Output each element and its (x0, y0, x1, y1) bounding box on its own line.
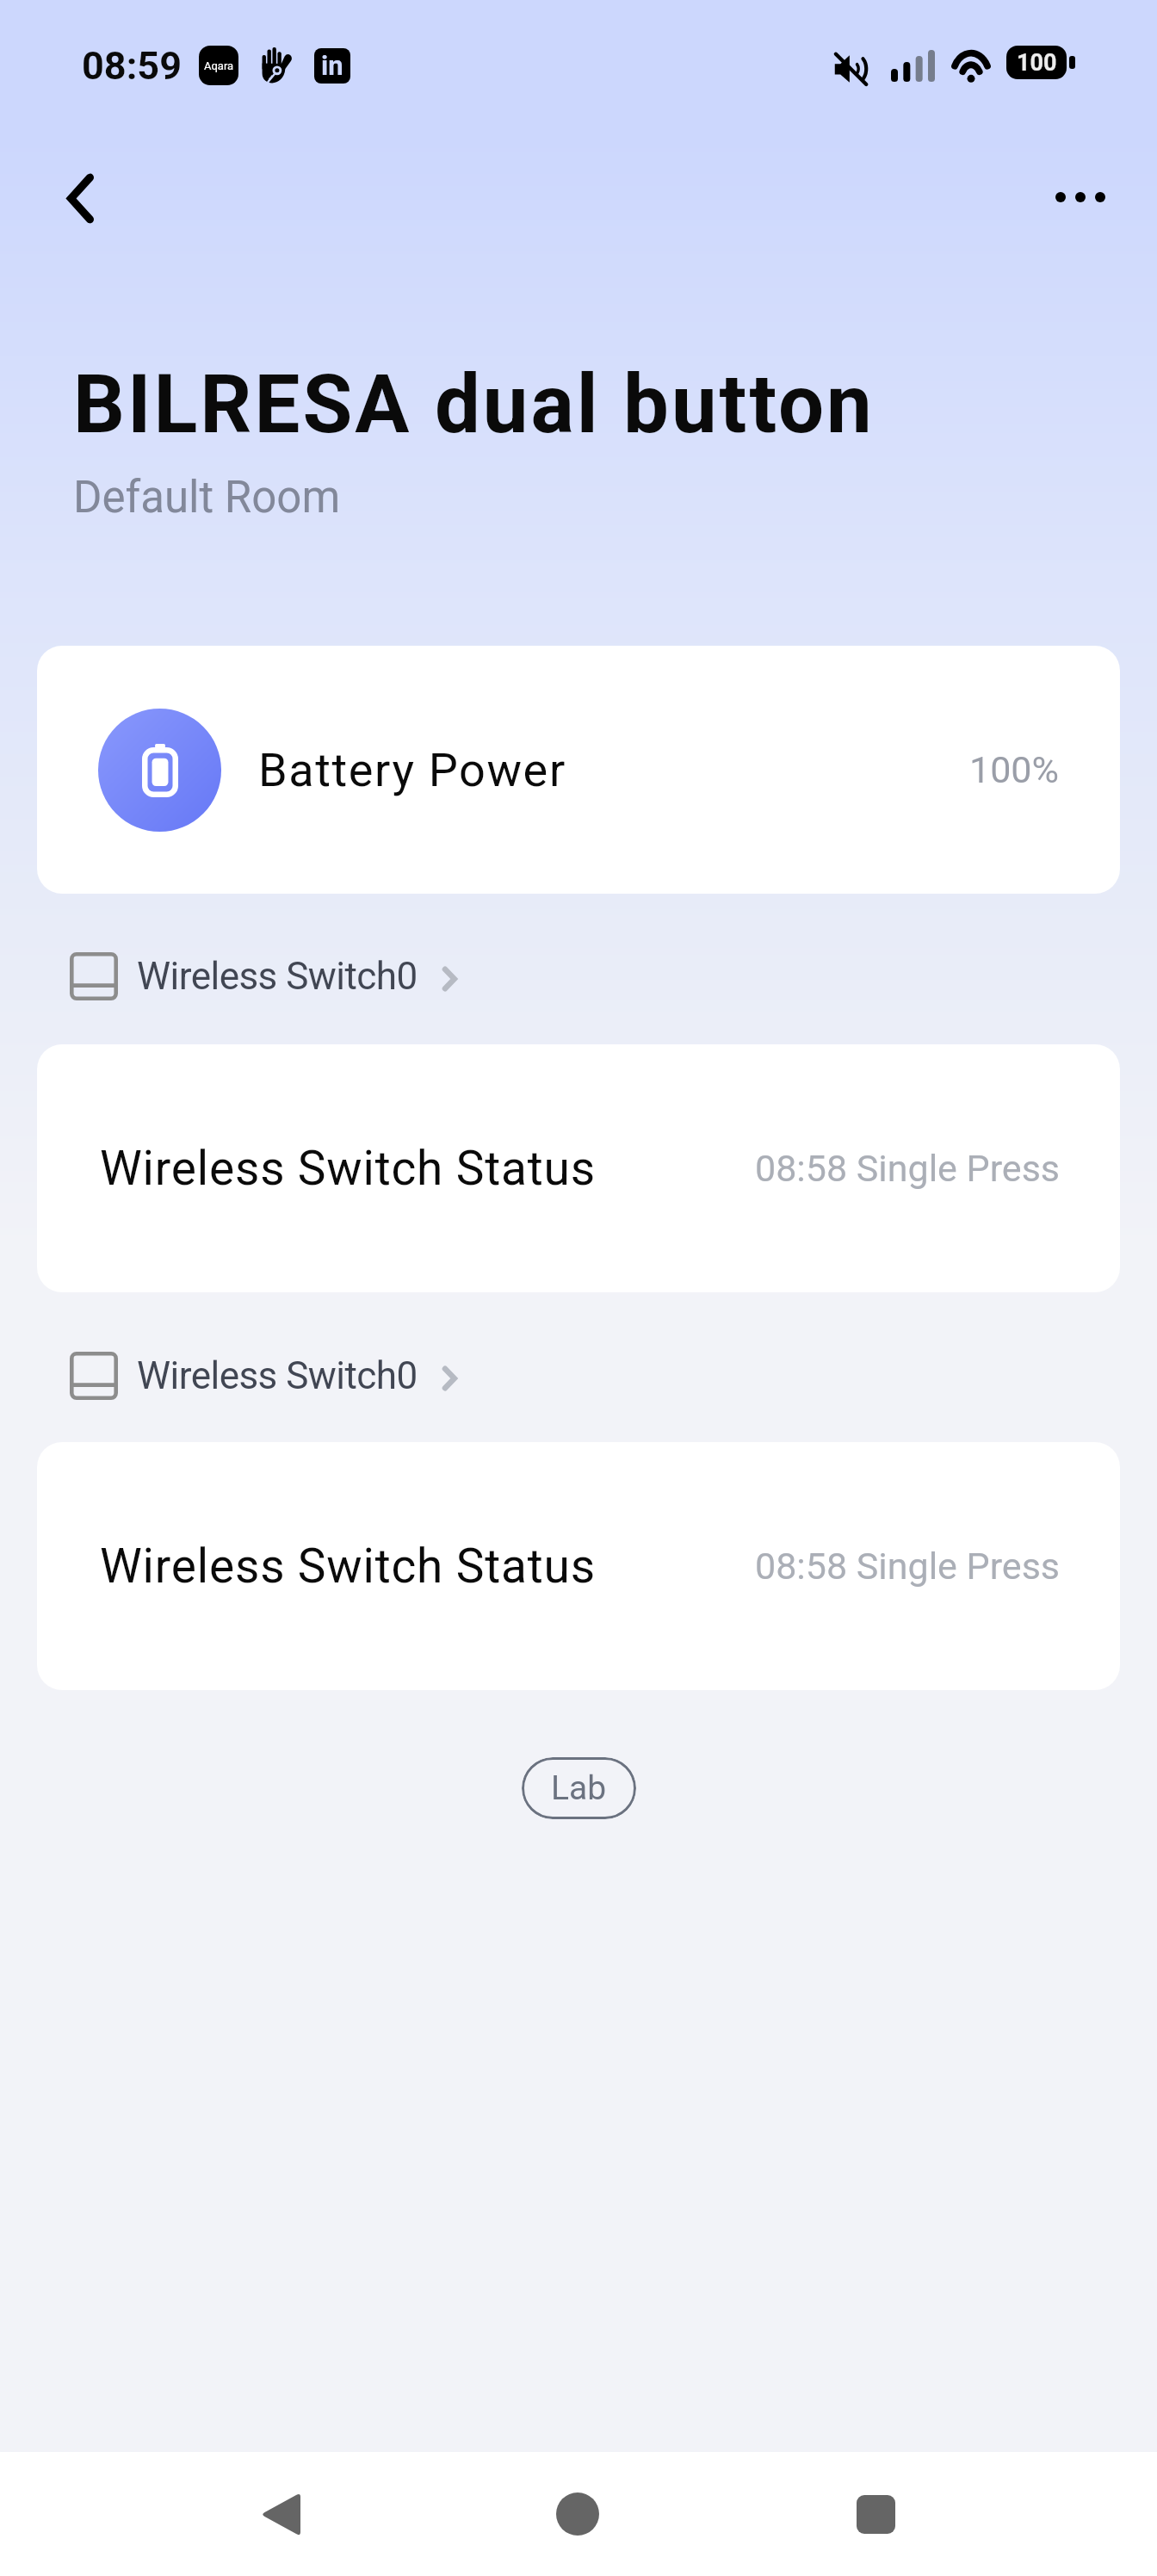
staticText: BILRESA dual button (73, 357, 875, 452)
button[interactable]: Back (219, 2452, 343, 2576)
staticText: 08:58 Single Press (755, 1545, 1061, 1588)
button[interactable]: Wireless Switch0 (70, 1352, 457, 1400)
button[interactable]: Lab (522, 1757, 636, 1819)
staticText: Lab (551, 1768, 607, 1808)
staticText: 08:58 Single Press (755, 1147, 1061, 1190)
staticText: Default Room (73, 472, 341, 523)
button[interactable]: Recent apps (814, 2452, 937, 2576)
button[interactable]: Battery Power (37, 646, 1120, 894)
button[interactable]: Home (516, 2452, 640, 2576)
staticText: Wireless Switch0 (137, 1353, 418, 1398)
staticText: 08:59 (82, 43, 182, 89)
staticText: Wireless Switch0 (137, 954, 418, 999)
staticText: in (321, 50, 343, 81)
staticText: 100% (969, 748, 1059, 791)
button[interactable]: Wireless Switch0 (70, 952, 457, 1000)
staticText: Battery Power (258, 743, 566, 797)
staticText: Wireless Switch Status (100, 1539, 596, 1594)
staticText: Aqara (204, 59, 234, 72)
staticText: 100 (1017, 49, 1057, 77)
button[interactable]: Wireless Switch Status (37, 1044, 1120, 1292)
button[interactable]: More options (1036, 152, 1125, 242)
button[interactable]: Wireless Switch Status (37, 1442, 1120, 1690)
staticText: Wireless Switch Status (100, 1141, 596, 1196)
button[interactable]: Back (35, 153, 125, 243)
